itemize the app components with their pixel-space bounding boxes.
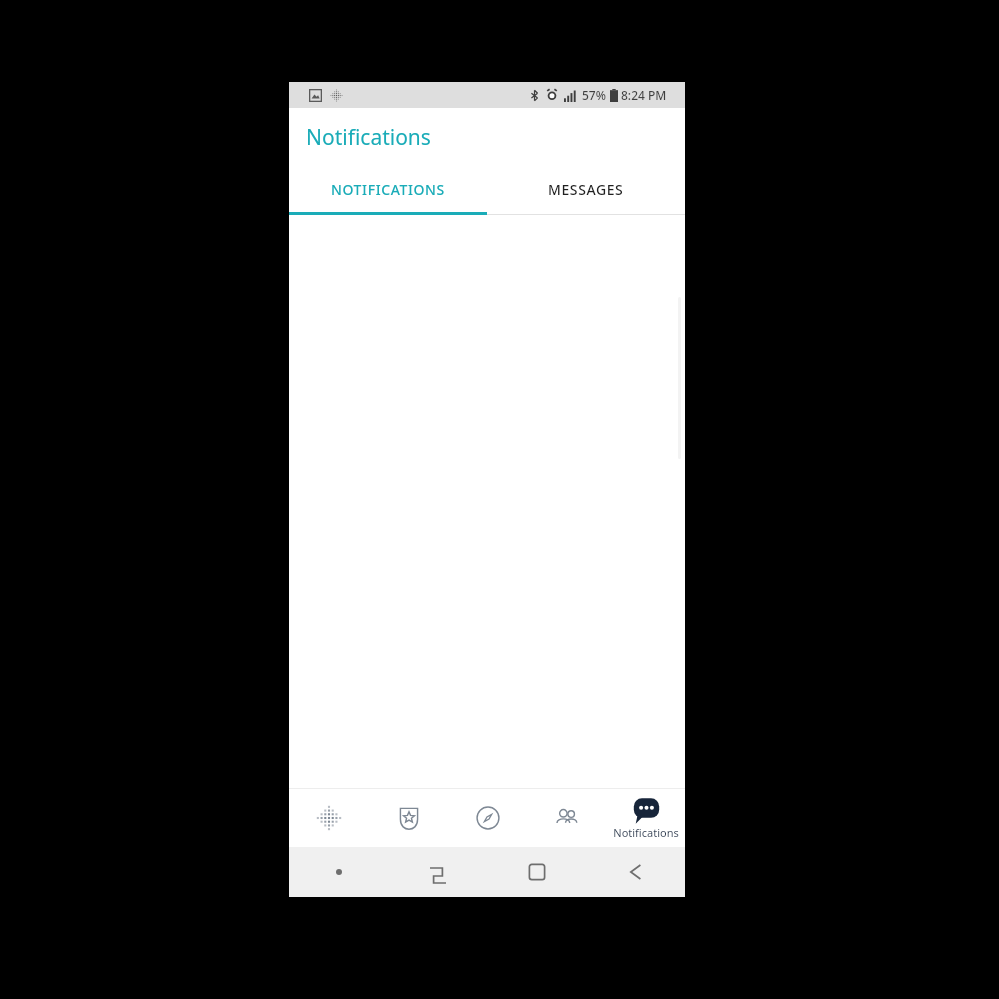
staticText: Notifications: [306, 123, 431, 152]
staticText: 57%: [582, 87, 606, 103]
button[interactable]: Friends: [527, 789, 606, 847]
staticText: NOTIFICATIONS: [331, 180, 445, 199]
button[interactable]: Menu: [289, 847, 388, 897]
staticText: 8:24 PM: [621, 87, 667, 103]
staticText: Notifications: [613, 825, 679, 840]
button[interactable]: Dashboard: [289, 789, 369, 847]
button[interactable]: Explore: [448, 789, 527, 847]
button[interactable]: NOTIFICATIONS: [289, 167, 487, 212]
button[interactable]: Home: [487, 847, 586, 897]
button[interactable]: Rewards: [369, 789, 448, 847]
button[interactable]: Recents: [388, 847, 487, 897]
button[interactable]: Back: [586, 847, 685, 897]
button[interactable]: Notifications: [606, 789, 685, 847]
staticText: MESSAGES: [548, 180, 624, 199]
button[interactable]: MESSAGES: [487, 167, 685, 212]
